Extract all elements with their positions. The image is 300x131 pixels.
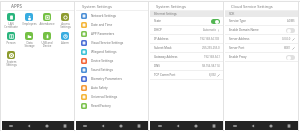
staticText: Device Settings: [91, 59, 114, 63]
staticText: 255.255.255.0: [202, 46, 220, 50]
staticText: Enable Domain Name: [229, 28, 286, 32]
staticText: TCP Comm Port: [154, 73, 209, 77]
button[interactable]: System Settings: [2, 51, 20, 70]
button[interactable]: Sound Settings: [76, 65, 148, 74]
staticText: APPS: [11, 3, 22, 9]
button[interactable]: Universal Settings: [76, 92, 148, 101]
staticText: DHCP: [154, 28, 203, 32]
staticText: 8,092: [209, 73, 216, 77]
button[interactable]: Server Port: [225, 44, 298, 52]
staticText: Attendance: [39, 22, 55, 26]
button[interactable]: Menu: [76, 121, 94, 130]
button[interactable]: Data Storage: [20, 32, 38, 51]
staticText: SDK: [229, 12, 235, 16]
staticText: Date and Time: [91, 23, 113, 27]
button[interactable]: Network Settings: [76, 11, 148, 20]
button[interactable]: Enable Domain Name: [225, 26, 298, 34]
staticText: System Settings: [156, 4, 186, 9]
staticText: Gateway Address: [154, 55, 204, 59]
button[interactable]: Switch off: [286, 55, 295, 60]
staticText: 0.0.0.0: [282, 37, 291, 41]
staticText: Visual Service Settings: [91, 41, 124, 45]
button[interactable]: Home: [187, 121, 205, 130]
staticText: Ethernet Settings: [154, 12, 177, 16]
button[interactable]: Auto Safety: [76, 83, 148, 92]
staticText: 192.168.54.103: [200, 37, 220, 41]
button[interactable]: Home: [112, 121, 130, 130]
staticText: USB and Device: [41, 41, 53, 48]
staticText: IP Address: [154, 37, 200, 41]
staticText: System Settings: [82, 4, 112, 9]
staticText: Cloud Service Settings: [231, 4, 273, 9]
staticText: Biometry Parameters: [91, 77, 122, 81]
button[interactable]: Recent apps: [280, 121, 298, 130]
button[interactable]: IP Address: [150, 35, 223, 43]
button[interactable]: Recent apps: [130, 121, 148, 130]
button[interactable]: LAN Certificate: [2, 13, 20, 32]
button[interactable]: USB and Device: [38, 32, 56, 51]
button[interactable]: Menu: [225, 121, 244, 130]
button[interactable]: Menu: [2, 121, 20, 130]
staticText: Sound Settings: [91, 68, 113, 72]
staticText: Enable Proxy: [229, 55, 286, 59]
button[interactable]: Wiegand Settings: [76, 47, 148, 56]
button[interactable]: APP Parameters: [76, 29, 148, 38]
staticText: Automatic: [203, 28, 216, 32]
staticText: Server Port: [229, 46, 284, 50]
staticText: Subnet Mask: [154, 46, 202, 50]
button[interactable]: Biometry Parameters: [76, 74, 148, 83]
button[interactable]: Device Settings: [76, 56, 148, 65]
button[interactable]: Reset/Factory: [76, 101, 148, 110]
staticText: Reset/Factory: [91, 104, 111, 108]
button[interactable]: Person: [2, 32, 20, 51]
staticText: LAN Certificate: [4, 22, 18, 29]
staticText: 8081: [284, 46, 291, 50]
button[interactable]: Visual Service Settings: [76, 38, 148, 47]
staticText: Access Settings: [60, 22, 71, 29]
staticText: DNS: [154, 64, 202, 68]
button[interactable]: Back: [20, 121, 38, 130]
staticText: Employees: [22, 22, 37, 26]
staticText: Universal Settings: [91, 95, 118, 99]
staticText: Service Type: [229, 19, 287, 23]
staticText: 58.154.58.114: [202, 64, 220, 68]
button[interactable]: Employees: [20, 13, 38, 32]
button[interactable]: Enable Proxy: [225, 53, 298, 61]
button[interactable]: Recent apps: [205, 121, 223, 130]
button[interactable]: Subnet Mask: [150, 44, 223, 52]
staticText: Auto Safety: [91, 86, 108, 90]
button[interactable]: DHCP: [150, 26, 223, 34]
staticText: Server Address: [229, 37, 282, 41]
button[interactable]: Date and Time: [76, 20, 148, 29]
button[interactable]: Back: [169, 121, 187, 130]
staticText: APP Parameters: [91, 32, 115, 36]
staticText: Alarm: [61, 41, 69, 45]
button[interactable]: State: [150, 17, 223, 25]
staticText: Data Storage: [24, 41, 35, 48]
button[interactable]: Switch off: [286, 28, 295, 33]
staticText: State: [154, 19, 211, 23]
staticText: 192.168.54.1: [204, 55, 220, 59]
button[interactable]: Back: [94, 121, 112, 130]
button[interactable]: Recent apps: [56, 121, 74, 130]
staticText: Network Settings: [91, 14, 117, 18]
button[interactable]: Access Settings: [56, 13, 74, 32]
button[interactable]: Attendance: [38, 13, 56, 32]
button[interactable]: TCP Comm Port: [150, 71, 223, 79]
staticText: Person: [6, 41, 16, 45]
button[interactable]: Service Type: [225, 17, 298, 25]
button[interactable]: Server Address: [225, 35, 298, 43]
button[interactable]: Home: [38, 121, 56, 130]
staticText: Wiegand Settings: [91, 50, 117, 54]
button[interactable]: DNS: [150, 62, 223, 70]
button[interactable]: Menu: [150, 121, 169, 130]
button[interactable]: Switch on: [211, 19, 220, 24]
button[interactable]: Alarm: [56, 32, 74, 51]
staticText: System Settings: [6, 60, 17, 67]
staticText: ADMS: [287, 19, 295, 23]
button[interactable]: Gateway Address: [150, 53, 223, 61]
button[interactable]: Back: [244, 121, 262, 130]
button[interactable]: Home: [262, 121, 280, 130]
